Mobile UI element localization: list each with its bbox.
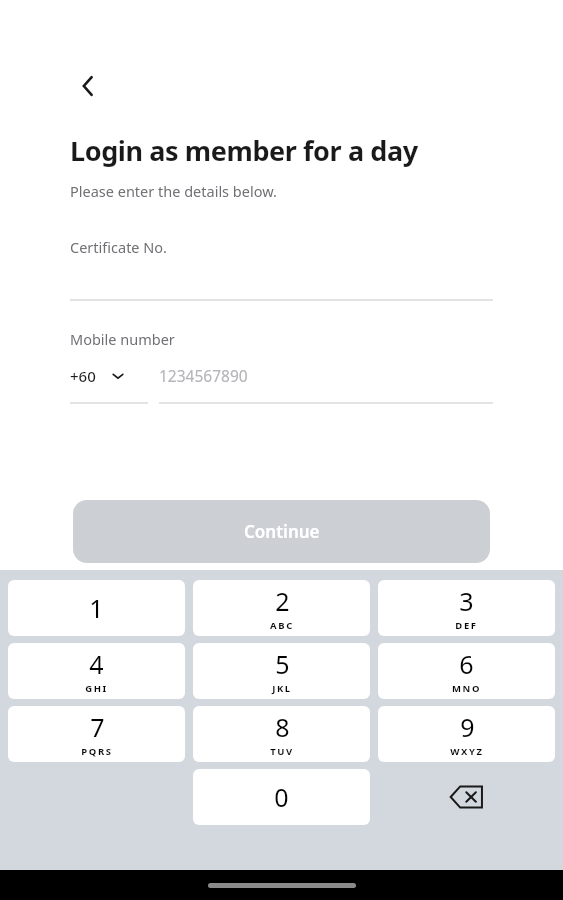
button[interactable]: 3	[378, 580, 555, 636]
staticText: 4	[89, 647, 104, 681]
button[interactable]: 0	[193, 769, 370, 825]
staticText: Continue	[244, 520, 320, 543]
staticText: DEF	[455, 619, 478, 632]
staticText: ABC	[270, 619, 294, 632]
button[interactable]: 2	[193, 580, 370, 636]
button[interactable]: 5	[193, 643, 370, 699]
button[interactable]: 4	[8, 643, 185, 699]
staticText: 2	[275, 584, 290, 618]
staticText: 3	[459, 584, 474, 618]
staticText: +60	[70, 366, 96, 386]
button[interactable]: Certificate No.	[70, 237, 493, 301]
staticText: Mobile number	[70, 329, 175, 349]
button[interactable]: 7	[8, 706, 185, 762]
button[interactable]: 6	[378, 643, 555, 699]
button[interactable]: 8	[193, 706, 370, 762]
staticText: MNO	[452, 682, 481, 695]
staticText: 8	[275, 710, 290, 744]
staticText: Certificate No.	[70, 237, 167, 257]
button[interactable]: Continue	[73, 500, 490, 563]
staticText: 5	[275, 647, 290, 681]
staticText: GHI	[85, 682, 108, 695]
staticText: 1	[89, 591, 104, 625]
staticText: 0	[274, 780, 289, 814]
staticText: TUV	[270, 745, 294, 758]
staticText: PQRS	[81, 745, 113, 758]
staticText: 9	[460, 710, 475, 744]
button[interactable]: +60	[70, 366, 148, 404]
staticText: JKL	[272, 682, 292, 695]
button[interactable]: Back	[64, 62, 112, 110]
button[interactable]: 1234567890	[159, 365, 493, 404]
staticText: 1234567890	[159, 365, 248, 386]
staticText: Login as member for a day	[70, 132, 418, 169]
button[interactable]: Backspace	[378, 769, 555, 825]
button[interactable]: 1	[8, 580, 185, 636]
staticText: WXYZ	[450, 745, 484, 758]
staticText: 7	[90, 710, 105, 744]
staticText: 6	[459, 647, 474, 681]
button[interactable]: 9	[378, 706, 555, 762]
staticText: Please enter the details below.	[70, 181, 277, 201]
